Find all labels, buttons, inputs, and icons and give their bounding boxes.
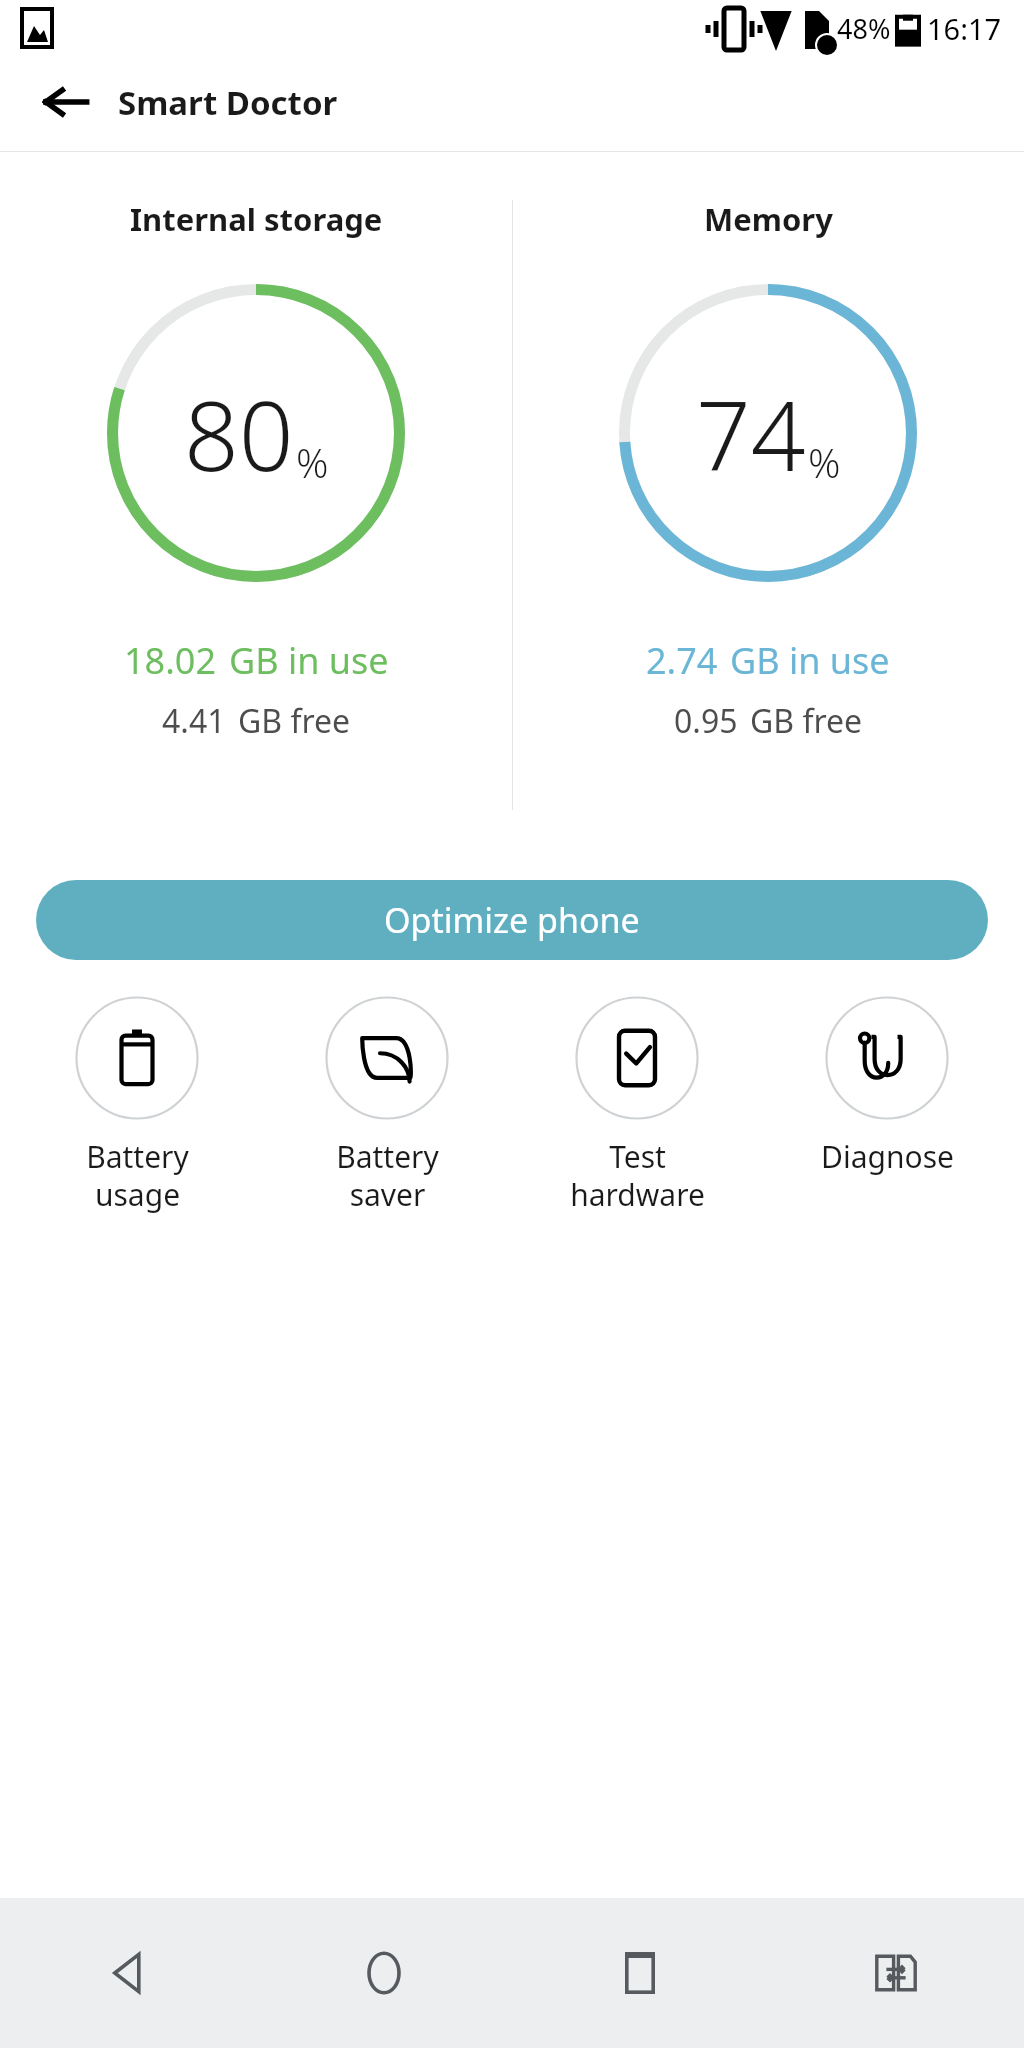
staticText: 16:17: [927, 9, 1002, 48]
staticText: 2.74: [646, 636, 718, 685]
button[interactable]: Home: [256, 1898, 512, 2048]
button[interactable]: Back: [34, 70, 98, 134]
staticText: Optimize phone: [384, 897, 640, 943]
button[interactable]: Battery saver: [262, 996, 512, 1215]
staticText: Test hardware: [570, 1136, 705, 1215]
button[interactable]: Optimize phone: [36, 880, 988, 960]
staticText: 80: [184, 368, 294, 499]
staticText: GB free: [238, 699, 351, 743]
staticText: Internal storage: [130, 198, 383, 240]
staticText: 48%: [837, 10, 891, 47]
staticText: Battery saver: [336, 1136, 439, 1215]
staticText: 0.95: [674, 699, 738, 743]
staticText: Diagnose: [821, 1136, 954, 1177]
staticText: Battery usage: [86, 1136, 189, 1215]
staticText: 74: [696, 368, 806, 499]
staticText: %: [808, 435, 841, 489]
button[interactable]: Switch app: [768, 1898, 1024, 2048]
staticText: Memory: [704, 198, 833, 240]
staticText: GB free: [750, 699, 863, 743]
staticText: 18.02: [124, 636, 217, 685]
button[interactable]: Recents: [512, 1898, 768, 2048]
button[interactable]: Diagnose: [762, 996, 1012, 1177]
button[interactable]: Test hardware: [512, 996, 762, 1215]
button[interactable]: Battery usage: [12, 996, 262, 1215]
staticText: GB in use: [730, 636, 890, 685]
staticText: %: [296, 435, 329, 489]
staticText: 4.41: [162, 699, 226, 743]
button[interactable]: Back: [0, 1898, 256, 2048]
staticText: GB in use: [229, 636, 389, 685]
staticText: Smart Doctor: [118, 80, 338, 125]
